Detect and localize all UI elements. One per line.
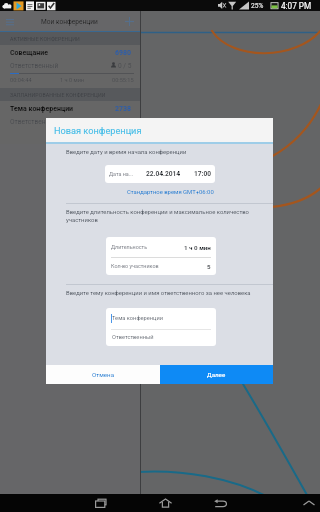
- staticText: 5: [207, 263, 211, 270]
- staticText: 00:04:44: [10, 77, 32, 84]
- staticText: Ответственный: [10, 118, 111, 126]
- staticText: Новая конференция: [54, 125, 142, 136]
- button[interactable]: Длительность: [106, 237, 216, 257]
- staticText: 2738: [115, 105, 132, 113]
- button[interactable]: Дата на...: [105, 165, 215, 183]
- staticText: Тема конференции: [10, 105, 115, 113]
- staticText: 1 ч 0 мин: [184, 244, 211, 251]
- button[interactable]: Back: [205, 494, 235, 512]
- staticText: Введите длительность конференции и макси…: [66, 209, 249, 216]
- staticText: Введите дату и время начала конференции: [66, 149, 187, 156]
- staticText: Введите тему конференции и имя ответстве…: [66, 290, 251, 297]
- button[interactable]: Create conference: [118, 11, 140, 32]
- button[interactable]: Open navigation menu: [0, 11, 20, 32]
- staticText: 1 ч 0 мин: [60, 77, 85, 84]
- staticText: Совещание: [10, 49, 115, 57]
- staticText: Ответственный: [10, 62, 111, 70]
- button[interactable]: Кол-во участников: [106, 257, 216, 275]
- staticText: 0 / 5: [118, 62, 132, 70]
- button[interactable]: Отмена: [46, 365, 160, 384]
- staticText: 4:07 PM: [281, 1, 312, 11]
- staticText: Мои конференции: [41, 18, 98, 26]
- button[interactable]: Recent apps: [86, 494, 116, 512]
- button[interactable]: Show navigation bar: [298, 494, 320, 512]
- staticText: Далее: [207, 371, 226, 378]
- staticText: 17:00: [194, 170, 211, 178]
- staticText: АКТИВНЫЕ КОНФЕРЕНЦИИ: [10, 36, 80, 42]
- button[interactable]: Далее: [160, 365, 273, 384]
- staticText: 00:55:15: [112, 77, 134, 84]
- staticText: ЗАПЛАНИРОВАННЫЕ КОНФЕРЕНЦИИ: [10, 92, 106, 98]
- staticText: Тема конференции: [112, 315, 163, 322]
- staticText: 6980: [115, 49, 132, 57]
- staticText: Длительность: [111, 244, 148, 250]
- button[interactable]: Тема конференции: [0, 101, 140, 144]
- staticText: Кол-во участников: [111, 263, 159, 269]
- button[interactable]: Тема конференции: [106, 308, 216, 329]
- staticText: участников: [66, 217, 98, 224]
- button[interactable]: Home: [150, 494, 180, 512]
- staticText: 25%: [251, 2, 264, 10]
- staticText: Дата на...: [109, 171, 134, 177]
- staticText: Ответственный: [112, 334, 154, 341]
- button[interactable]: Совещание: [0, 45, 140, 88]
- button[interactable]: Стандартное время GMT+06:00: [127, 189, 214, 196]
- button[interactable]: Ответственный: [106, 329, 216, 346]
- staticText: 22.04.2014: [146, 170, 181, 178]
- staticText: Отмена: [92, 371, 115, 378]
